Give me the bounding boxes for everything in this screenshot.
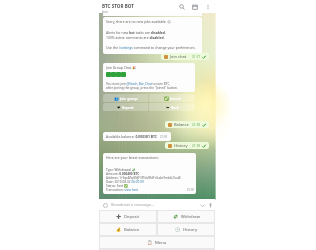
button[interactable]: ⬅️: [149, 103, 195, 111]
button[interactable]: More options: [201, 0, 214, 13]
staticText: Here are your latest transactions:: [106, 155, 159, 160]
button[interactable]: 👥: [103, 94, 148, 102]
staticText: 21:18: [187, 188, 194, 192]
staticText: Back: [171, 105, 179, 110]
staticText: after joining the group, press the "Join…: [106, 86, 178, 90]
staticText: Deposit: [124, 214, 140, 220]
staticText: 🕒: [175, 227, 181, 232]
button[interactable]: 💸: [158, 211, 214, 222]
button[interactable]: History: [165, 142, 209, 149]
staticText: Withdraw: [181, 214, 200, 220]
staticText: Joined: [170, 96, 181, 101]
button[interactable]: ❤️: [103, 103, 148, 111]
staticText: History: [183, 227, 198, 233]
button[interactable]: 🕒: [158, 224, 214, 235]
staticText: 💰: [116, 227, 122, 232]
button[interactable]: Search: [175, 0, 188, 13]
staticText: Use the /settings command to change your…: [106, 45, 196, 50]
staticText: bot: [102, 9, 108, 14]
staticText: 💸: [173, 214, 179, 219]
staticText: Balance: [174, 122, 189, 127]
staticText: Balance: [124, 227, 140, 233]
staticText: Date: 2019-08-02 06:07:09: [106, 180, 144, 184]
staticText: Join Group Chat 🎉️: [106, 65, 137, 70]
button[interactable]: 📋: [100, 237, 214, 248]
staticText: ❤️: [117, 105, 121, 110]
staticText: 21:18: [192, 144, 201, 148]
staticText: Amount: 0.000400 BTC: [106, 172, 140, 176]
staticText: Type: Withdrawal 💸: [106, 168, 136, 172]
staticText: Join chat: [170, 54, 187, 59]
staticText: Status: Sent ✅: [106, 184, 128, 188]
staticText: 21:18: [160, 135, 167, 139]
staticText: Transaction: view here: [106, 188, 139, 192]
button[interactable]: Join chat: [161, 53, 209, 60]
staticText: BTC STOR BOT: [102, 3, 134, 9]
staticText: ✅: [164, 96, 169, 101]
staticText: Address: 1r9qeATqGNjF3f1bkRfdFrUabcYmbkL…: [106, 176, 181, 180]
staticText: 21:18: [192, 123, 201, 127]
staticText: 100% active comments are disabled.: [106, 35, 165, 40]
staticText: ⬅️: [166, 105, 170, 110]
button[interactable]: Emoji: [101, 201, 109, 209]
staticText: 👥: [114, 96, 119, 101]
staticText: Alerts for new bot tasks are disabled.: [106, 30, 166, 35]
staticText: You must join @Stash_Bot_Chat to earn BT…: [106, 82, 171, 86]
staticText: Join group: [120, 96, 138, 101]
staticText: Available balance: 0.000381 BTC: [106, 134, 158, 139]
button[interactable]: Balance: [165, 121, 209, 128]
staticText: Sorry, there are no new jobs available. …: [106, 19, 171, 24]
staticText: 📋: [147, 240, 153, 245]
button[interactable]: ✅: [149, 94, 195, 102]
staticText: 21:17: [192, 55, 201, 59]
button[interactable]: 💰: [100, 224, 156, 235]
staticText: ➕: [116, 214, 122, 219]
staticText: History: [174, 143, 188, 148]
staticText: Report: [122, 105, 134, 110]
button[interactable]: Calendar: [188, 0, 201, 13]
staticText: Broadcast a message...: [111, 202, 198, 207]
staticText: Menu: [155, 240, 167, 246]
button[interactable]: ➕: [100, 211, 156, 222]
button[interactable]: Voice message: [206, 201, 214, 209]
button[interactable]: Attach: [198, 201, 206, 209]
